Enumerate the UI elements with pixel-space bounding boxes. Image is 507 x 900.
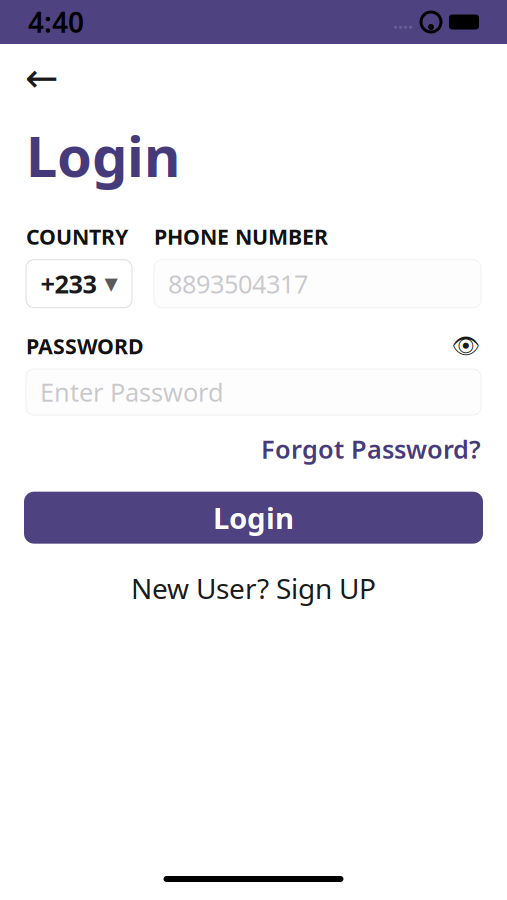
button[interactable]: 8893504317: [154, 260, 481, 308]
staticText: Forgot Password?: [261, 432, 481, 466]
button[interactable]: Back: [16, 56, 68, 100]
staticText: Login: [213, 498, 294, 537]
staticText: COUNTRY: [26, 222, 128, 251]
staticText: Login: [26, 118, 180, 192]
staticText: PHONE NUMBER: [154, 222, 328, 251]
staticText: ←: [25, 55, 59, 101]
staticText: 8893504317: [168, 267, 308, 300]
button[interactable]: Login: [24, 492, 483, 544]
staticText: New User? Sign UP: [131, 570, 376, 607]
button[interactable]: Enter Password: [26, 369, 481, 415]
staticText: 4:40: [28, 3, 84, 41]
staticText: 👁: [451, 333, 480, 359]
staticText: +233: [40, 267, 96, 300]
button[interactable]: New User? Sign UP: [131, 570, 376, 607]
staticText: ....: [393, 10, 413, 33]
button[interactable]: Forgot Password?: [261, 432, 481, 466]
staticText: PASSWORD: [26, 332, 144, 360]
button[interactable]: Show password: [451, 334, 481, 358]
staticText: ▼: [104, 274, 117, 294]
staticText: Enter Password: [40, 375, 224, 409]
button[interactable]: +233: [26, 260, 132, 308]
